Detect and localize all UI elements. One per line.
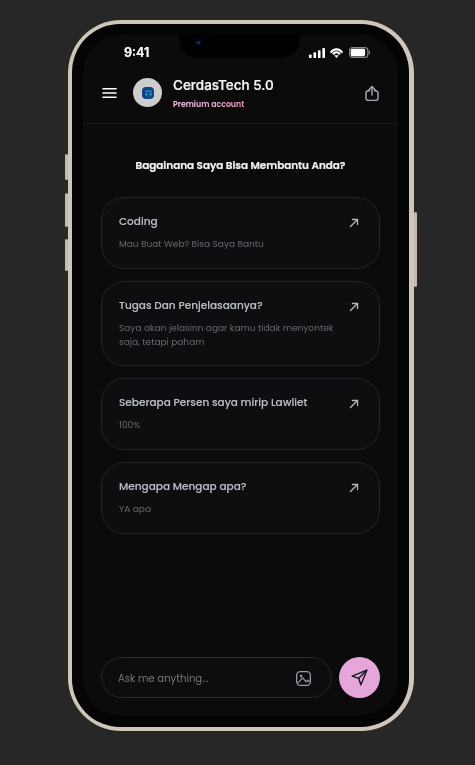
staticText: 9:41	[124, 45, 150, 60]
staticText: Tugas Dan Penjelasaanya?	[119, 298, 263, 313]
button[interactable]: Seberapa Persen saya mirip Lawliet	[101, 378, 380, 450]
staticText: Saya akan jelasinn agar kamu tidak menyo…	[119, 322, 334, 348]
staticText: YA apa	[119, 503, 151, 516]
staticText: CerdasTech 5.0	[173, 77, 274, 93]
button[interactable]: Menu	[96, 80, 122, 106]
staticText: Mau Buat Web? Bisa Saya Bantu	[119, 238, 264, 251]
staticText: Bagainana Saya Bisa Membantu Anda?	[83, 158, 398, 173]
staticText: Seberapa Persen saya mirip Lawliet	[119, 395, 308, 410]
staticText: 100%	[119, 419, 141, 432]
button[interactable]: Share	[359, 80, 385, 106]
button[interactable]: Attach image	[293, 668, 313, 688]
staticText: Ask me anything...	[118, 671, 293, 685]
button[interactable]: Send	[339, 657, 380, 698]
staticText: Coding	[119, 214, 158, 229]
button[interactable]: Ask me anything...	[101, 657, 332, 698]
button[interactable]: Coding	[101, 197, 380, 269]
button[interactable]: Mengapa Mengap apa?	[101, 462, 380, 534]
button[interactable]: Tugas Dan Penjelasaanya?	[101, 281, 380, 366]
staticText: Premium account	[173, 99, 245, 110]
staticText: Mengapa Mengap apa?	[119, 479, 247, 494]
